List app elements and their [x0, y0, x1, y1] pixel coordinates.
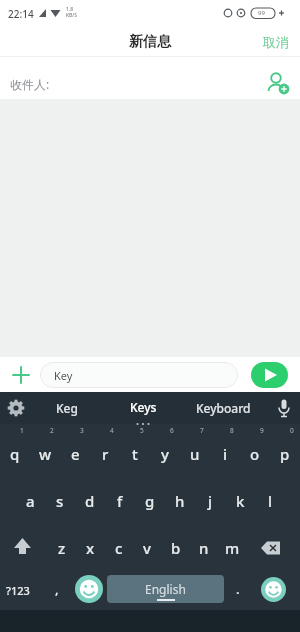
staticText: 1 [20, 426, 24, 435]
button[interactable]: Keys [118, 394, 168, 427]
button[interactable]: 0 [270, 424, 300, 477]
staticText: 8 [230, 426, 234, 435]
staticText: h [175, 491, 185, 511]
button[interactable]: 9 [240, 424, 270, 477]
staticText: 新信息 [129, 33, 171, 51]
staticText: s [56, 491, 64, 511]
button[interactable]: ?123 [0, 572, 36, 608]
staticText: 3 [80, 426, 84, 435]
staticText: 0 [290, 426, 294, 435]
button[interactable] [264, 69, 292, 97]
staticText: n [199, 538, 209, 558]
button[interactable]: 6 [150, 424, 180, 477]
button[interactable]: English [107, 575, 224, 603]
button[interactable] [248, 524, 292, 572]
staticText: English [145, 581, 186, 597]
staticText: l [268, 491, 273, 511]
staticText: Keyboard [196, 400, 251, 416]
button[interactable]: x [75, 524, 105, 572]
button[interactable] [8, 362, 34, 388]
staticText: q [10, 444, 20, 464]
staticText: m [225, 538, 240, 558]
staticText: t [132, 444, 138, 464]
staticText: 4 [110, 426, 114, 435]
button[interactable] [251, 362, 288, 388]
staticText: j [208, 491, 213, 511]
staticText: v [143, 538, 151, 558]
button[interactable]: 取消 [256, 30, 296, 54]
staticText: c [115, 538, 123, 558]
button[interactable]: k [225, 477, 255, 524]
button[interactable]: s [45, 477, 75, 524]
staticText: , [55, 580, 59, 598]
staticText: 9 [260, 426, 264, 435]
button[interactable]: 2 [30, 424, 60, 477]
button[interactable]: 1 [0, 424, 30, 477]
button[interactable] [272, 396, 296, 420]
button[interactable]: Keg [44, 394, 90, 421]
staticText: r [102, 444, 109, 464]
staticText: d [85, 491, 95, 511]
staticText: 5 [140, 426, 144, 435]
button[interactable]: z [47, 524, 77, 572]
staticText: k [236, 491, 245, 511]
button[interactable]: , [42, 570, 72, 608]
button[interactable] [0, 524, 45, 572]
button[interactable]: h [165, 477, 195, 524]
button[interactable] [0, 57, 300, 99]
button[interactable]: 5 [120, 424, 150, 477]
button[interactable] [261, 577, 286, 602]
staticText: 6 [170, 426, 174, 435]
button[interactable]: Keyboard [190, 394, 256, 421]
staticText: g [145, 491, 155, 511]
button[interactable]: 8 [210, 424, 240, 477]
staticText: i [223, 444, 228, 464]
staticText: p [280, 444, 290, 464]
button[interactable]: d [75, 477, 105, 524]
staticText: a [26, 491, 35, 511]
staticText: 1.8 [66, 6, 74, 13]
staticText: z [58, 538, 66, 558]
staticText: f [117, 491, 123, 511]
staticText: 7 [200, 426, 204, 435]
button[interactable]: n [189, 524, 219, 572]
button[interactable]: f [105, 477, 135, 524]
staticText: x [86, 538, 95, 558]
staticText: Key [54, 368, 73, 383]
button[interactable]: j [195, 477, 225, 524]
button[interactable]: . [228, 570, 248, 608]
staticText: . [236, 580, 240, 598]
staticText: e [71, 444, 80, 464]
staticText: 取消 [263, 34, 289, 50]
staticText: b [171, 538, 181, 558]
button[interactable]: c [104, 524, 134, 572]
button[interactable]: v [132, 524, 162, 572]
staticText: Keys [130, 399, 157, 415]
button[interactable]: 4 [90, 424, 120, 477]
button[interactable]: l [255, 477, 285, 524]
button[interactable]: 3 [60, 424, 90, 477]
staticText: 2 [50, 426, 54, 435]
staticText: u [190, 444, 200, 464]
button[interactable]: m [217, 524, 247, 572]
button[interactable]: a [15, 477, 45, 524]
button[interactable]: g [135, 477, 165, 524]
staticText: Keg [56, 400, 78, 416]
staticText: y [161, 444, 169, 464]
staticText: o [250, 444, 260, 464]
staticText: ?123 [6, 583, 30, 598]
button[interactable]: b [161, 524, 191, 572]
staticText: w [39, 444, 52, 464]
staticText: 99 [258, 9, 265, 17]
button[interactable] [4, 396, 28, 420]
staticText: KB/S [66, 12, 77, 19]
button[interactable] [75, 575, 103, 603]
button[interactable]: Key [40, 362, 238, 388]
staticText: 22:14 [8, 7, 34, 21]
button[interactable]: 7 [180, 424, 210, 477]
staticText: 收件人: [10, 76, 50, 92]
